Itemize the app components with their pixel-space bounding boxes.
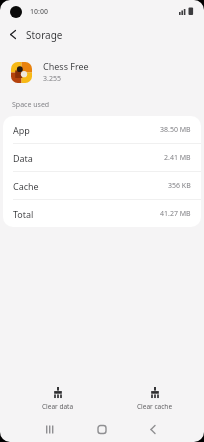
button[interactable]: Total [3,200,201,227]
button[interactable]: App [3,116,201,144]
staticText: Clear cache [137,402,173,409]
staticText: Data [13,152,33,164]
button[interactable] [141,418,165,442]
staticText: Space used [12,100,50,110]
staticText: App [13,124,30,136]
staticText: 2.41 MB [164,153,191,163]
staticText: 10:00 [30,7,48,17]
staticText: Chess Free [43,60,89,72]
staticText: Total [13,208,34,220]
staticText: 3.255 [43,74,61,84]
staticText: 41.27 MB [160,209,191,219]
button[interactable]: Clear data [9,387,106,409]
staticText: 38.50 MB [160,125,191,135]
button[interactable] [90,418,114,442]
staticText: Storage [26,28,63,42]
button[interactable]: Cache [3,172,201,200]
button[interactable]: Data [3,144,201,172]
staticText: 356 KB [168,181,191,191]
button[interactable]: Clear cache [106,387,204,409]
button[interactable] [38,418,62,442]
staticText: Clear data [42,402,74,409]
staticText: Cache [13,180,39,192]
button[interactable] [0,24,26,45]
